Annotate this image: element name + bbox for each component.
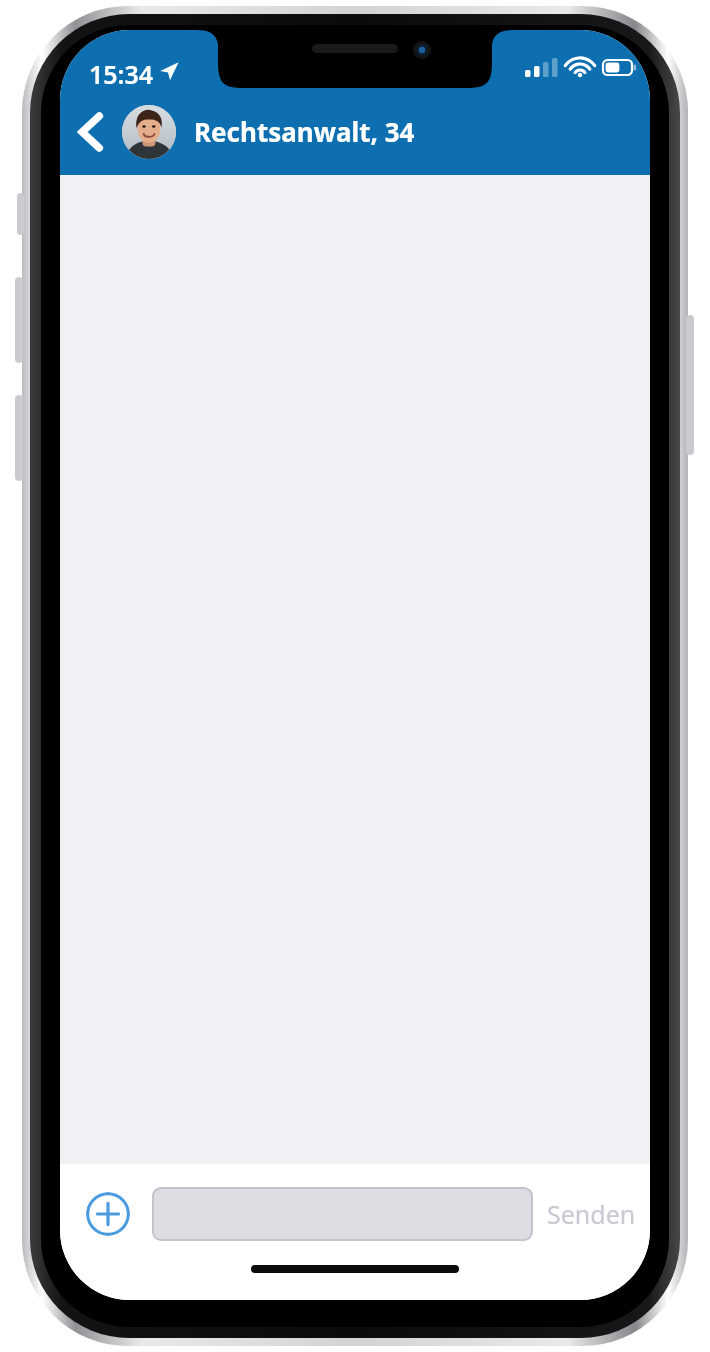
button[interactable]: Back [60, 88, 122, 175]
staticText: Rechtsanwalt, 34 [194, 114, 415, 149]
button[interactable] [152, 1187, 533, 1241]
button[interactable]: Add attachment [86, 1192, 130, 1236]
staticText: Senden [547, 1197, 636, 1231]
button[interactable]: Senden [547, 1187, 636, 1241]
staticText: 15:34 [89, 57, 154, 91]
button[interactable]: Profile photo [122, 105, 176, 159]
